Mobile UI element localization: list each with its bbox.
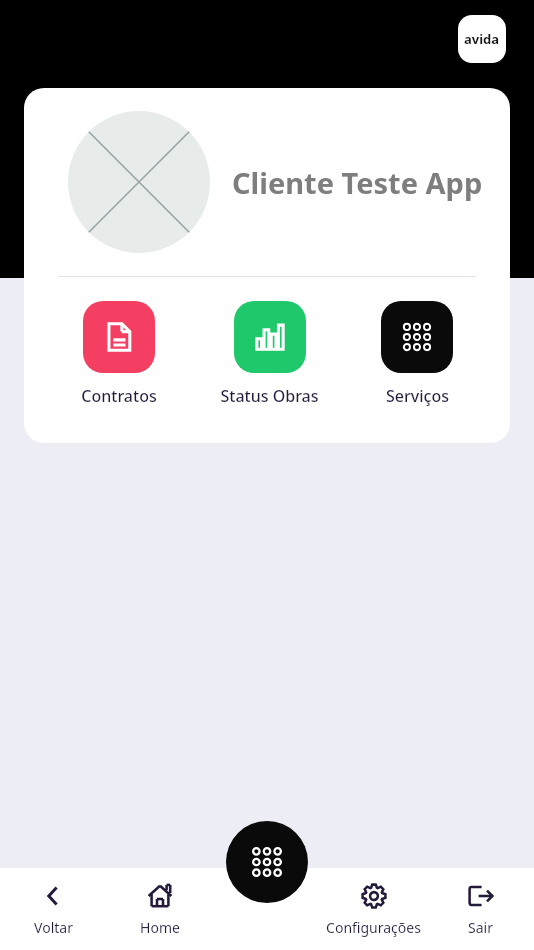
button[interactable]: avida logo: [458, 15, 506, 63]
staticText: Serviços: [386, 385, 449, 407]
button[interactable]: Serviços: [375, 301, 459, 407]
staticText: Status Obras: [220, 385, 319, 407]
staticText: Sair: [468, 918, 493, 937]
button[interactable]: Voltar: [0, 868, 106, 950]
staticText: Contratos: [81, 385, 157, 407]
button[interactable]: Apps menu: [226, 821, 308, 903]
staticText: Configurações: [326, 918, 421, 937]
button[interactable]: Status Obras: [214, 301, 325, 407]
staticText: Voltar: [34, 918, 73, 937]
button[interactable]: Sair: [427, 868, 534, 950]
staticText: Cliente Teste App: [232, 163, 483, 202]
button[interactable]: Contratos: [75, 301, 163, 407]
button[interactable]: Home: [106, 868, 213, 950]
button[interactable]: Configurações: [320, 868, 427, 950]
staticText: Home: [140, 918, 180, 937]
staticText: avida: [464, 30, 500, 48]
